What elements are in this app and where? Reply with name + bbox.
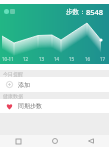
staticText: 健康数据: [3, 93, 23, 99]
staticText: 同期步数: [18, 102, 42, 110]
staticText: 步数：: [66, 8, 86, 16]
staticText: 13: [39, 56, 45, 62]
button[interactable]: 添加: [0, 77, 109, 92]
staticText: 15: [69, 56, 75, 62]
staticText: 12: [23, 56, 29, 62]
staticText: 添加: [18, 81, 30, 89]
staticText: 10-11: [2, 56, 14, 62]
staticText: 14: [54, 56, 60, 62]
staticText: 16: [85, 56, 91, 62]
button[interactable]: Recents: [0, 139, 37, 144]
button[interactable]: 同期步数: [0, 99, 109, 113]
staticText: 17: [100, 56, 106, 62]
button[interactable]: Home: [37, 138, 73, 144]
button[interactable]: Back: [73, 138, 109, 144]
staticText: 8548: [86, 7, 104, 17]
staticText: 今日提醒: [3, 71, 23, 77]
